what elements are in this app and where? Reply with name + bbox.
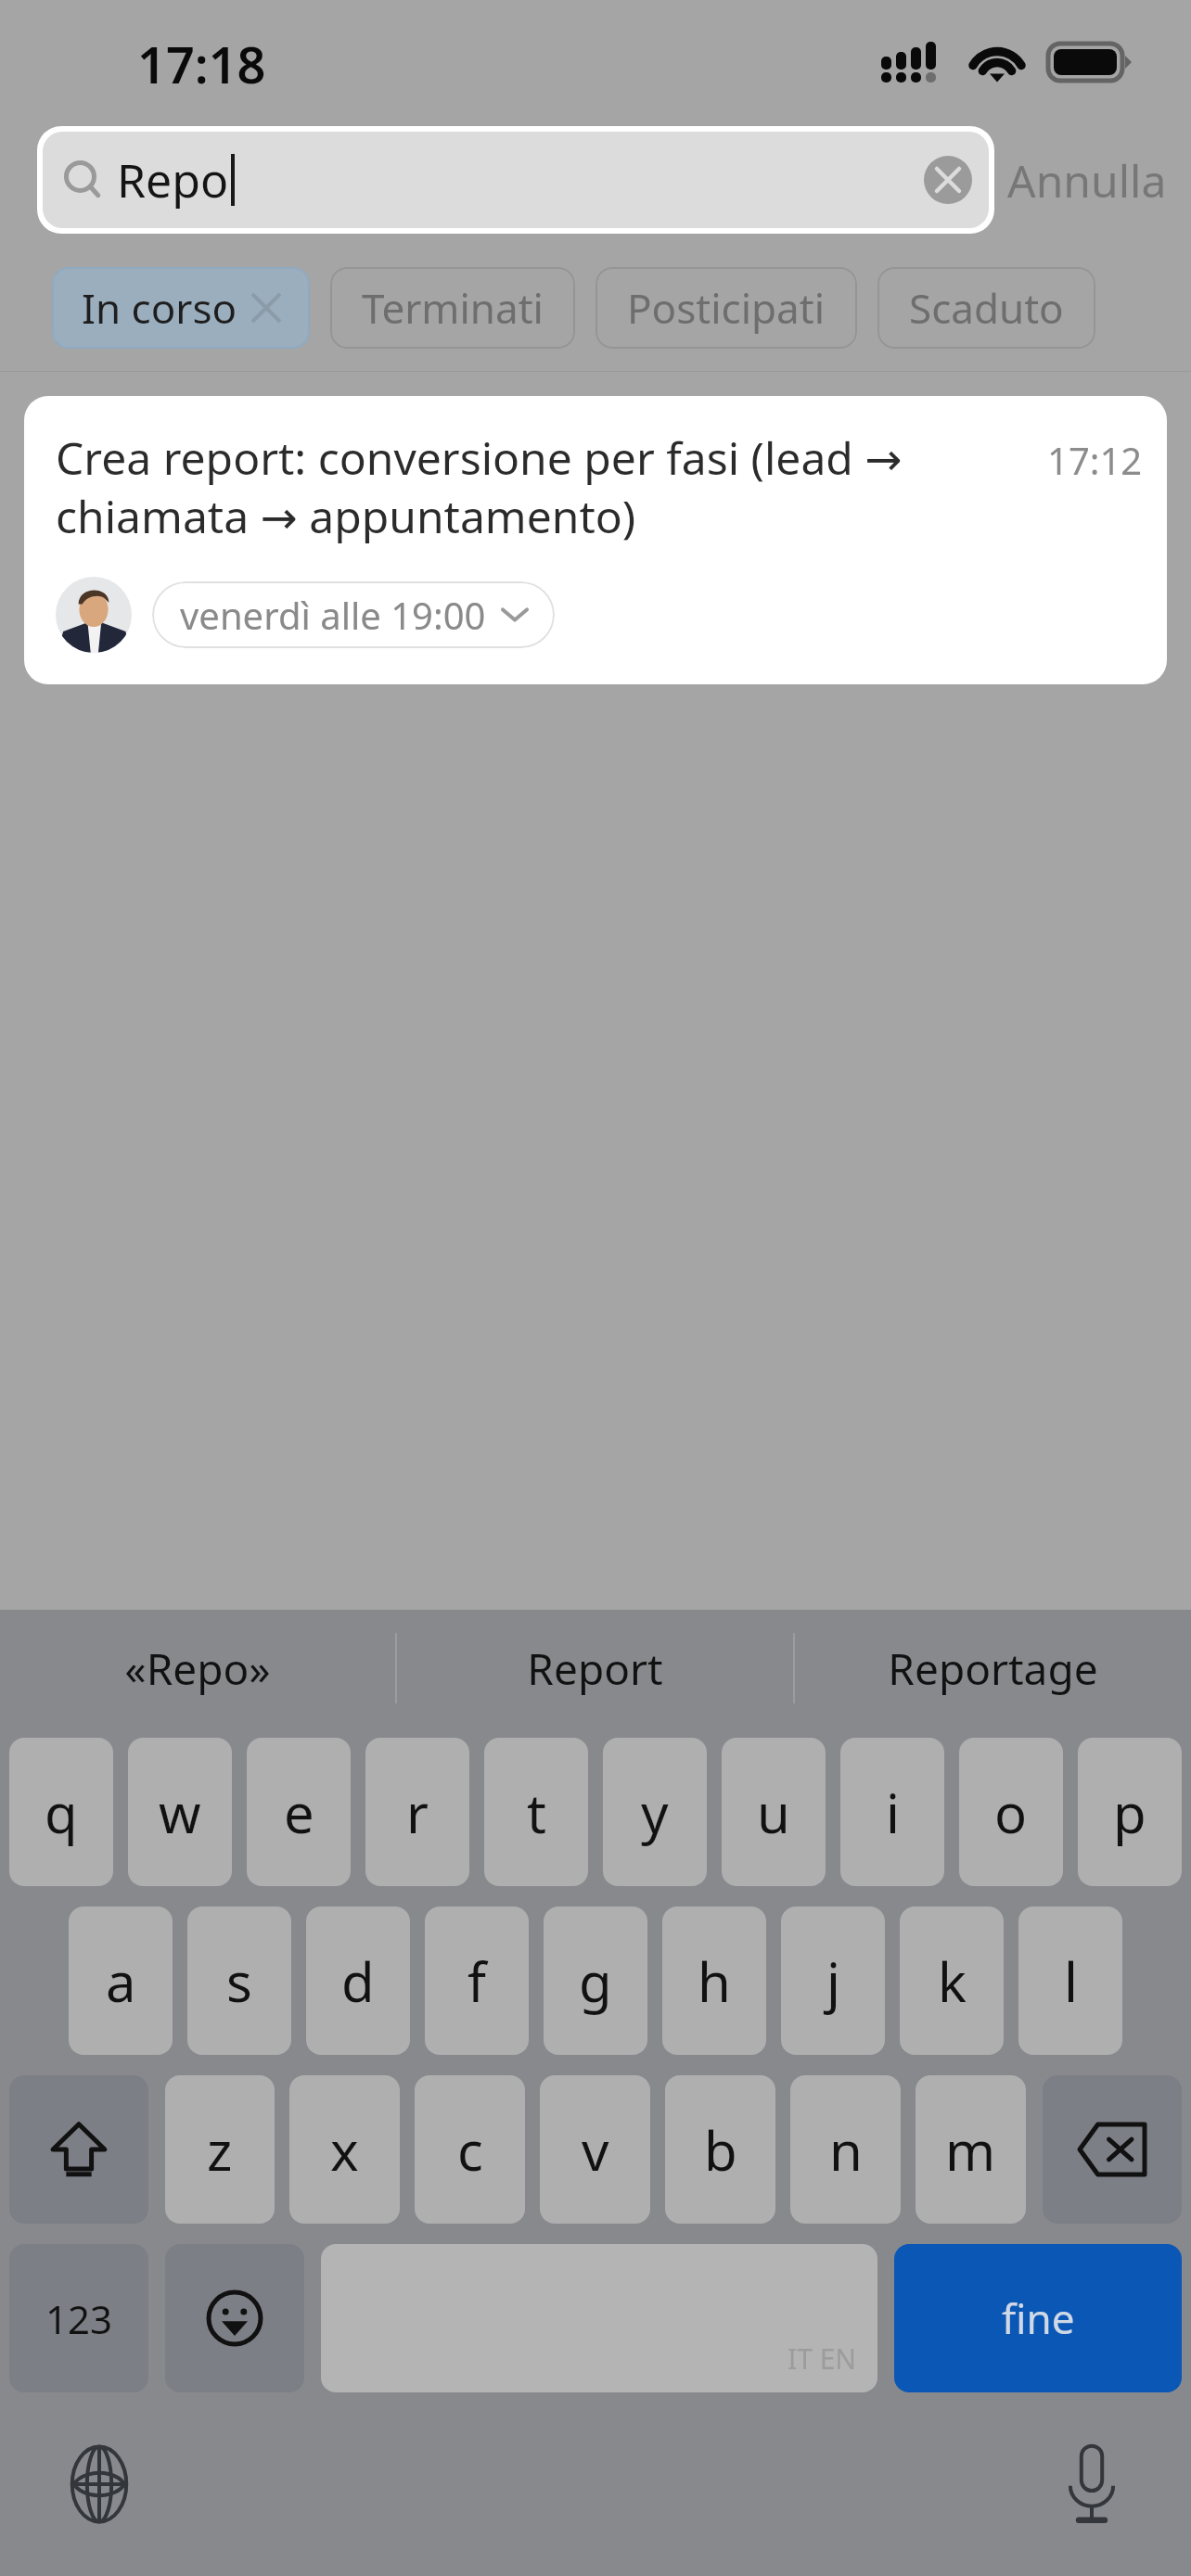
button[interactable]: Cambia tastiera: [48, 2433, 150, 2535]
button[interactable]: t: [484, 1738, 588, 1886]
staticText: b: [704, 2113, 737, 2187]
staticText: x: [330, 2113, 359, 2187]
button[interactable]: g: [544, 1906, 647, 2055]
button[interactable]: z: [165, 2075, 275, 2224]
staticText: fine: [1002, 2290, 1075, 2346]
staticText: h: [698, 1945, 731, 2018]
staticText: venerdì alle 19:00: [180, 590, 486, 640]
staticText: d: [341, 1945, 375, 2018]
staticText: Annulla: [1007, 150, 1167, 210]
button[interactable]: In corso: [52, 267, 310, 349]
button[interactable]: c: [415, 2075, 525, 2224]
button[interactable]: fine: [894, 2244, 1182, 2392]
staticText: 17:12: [1047, 435, 1143, 485]
staticText: f: [467, 1945, 486, 2018]
staticText: 17:18: [137, 30, 266, 98]
button[interactable]: r: [365, 1738, 469, 1886]
button[interactable]: n: [790, 2075, 901, 2224]
button[interactable]: d: [306, 1906, 410, 2055]
button[interactable]: Crea report: conversione per fasi (lead …: [24, 396, 1167, 684]
button[interactable]: h: [662, 1906, 766, 2055]
staticText: c: [457, 2113, 483, 2187]
staticText: n: [829, 2113, 863, 2187]
staticText: i: [886, 1776, 900, 1849]
staticText: w: [159, 1776, 201, 1849]
button[interactable]: Terminati: [330, 267, 575, 349]
staticText: z: [207, 2113, 233, 2187]
button[interactable]: Cancella testo: [924, 156, 972, 204]
button[interactable]: Dettatura: [1041, 2433, 1143, 2535]
button[interactable]: Cancella: [1043, 2075, 1182, 2224]
staticText: t: [527, 1776, 546, 1849]
staticText: Repo: [117, 148, 229, 211]
button[interactable]: y: [603, 1738, 707, 1886]
button[interactable]: Annulla: [1007, 150, 1167, 210]
button[interactable]: IT EN: [321, 2244, 877, 2392]
staticText: IT EN: [788, 2340, 857, 2378]
staticText: 123: [45, 2292, 113, 2345]
staticText: In corso: [82, 280, 237, 336]
staticText: l: [1064, 1945, 1078, 2018]
button[interactable]: u: [722, 1738, 826, 1886]
staticText: v: [582, 2113, 609, 2187]
staticText: u: [757, 1776, 790, 1849]
staticText: Report: [527, 1639, 663, 1698]
button[interactable]: i: [840, 1738, 944, 1886]
button[interactable]: Emoji: [165, 2244, 304, 2392]
staticText: Terminati: [362, 280, 544, 336]
staticText: k: [938, 1945, 967, 2018]
button[interactable]: k: [900, 1906, 1004, 2055]
button[interactable]: Posticipati: [595, 267, 857, 349]
staticText: q: [45, 1776, 78, 1849]
button[interactable]: q: [9, 1738, 113, 1886]
button[interactable]: w: [128, 1738, 232, 1886]
button[interactable]: 123: [9, 2244, 148, 2392]
button[interactable]: m: [916, 2075, 1026, 2224]
button[interactable]: s: [187, 1906, 291, 2055]
staticText: Scaduto: [909, 280, 1064, 336]
staticText: «Repo»: [124, 1639, 271, 1698]
button[interactable]: a: [69, 1906, 173, 2055]
staticText: g: [579, 1945, 612, 2018]
staticText: j: [826, 1945, 840, 2018]
staticText: o: [994, 1776, 1028, 1849]
staticText: Reportage: [888, 1639, 1098, 1698]
button[interactable]: v: [540, 2075, 650, 2224]
button[interactable]: x: [289, 2075, 400, 2224]
staticText: Crea report: conversione per fasi (lead …: [56, 427, 1032, 547]
staticText: m: [945, 2113, 996, 2187]
staticText: s: [226, 1945, 252, 2018]
button[interactable]: e: [247, 1738, 351, 1886]
button[interactable]: Repo: [43, 132, 989, 228]
staticText: Posticipati: [627, 280, 826, 336]
staticText: a: [106, 1945, 136, 2018]
button[interactable]: Maiuscole: [9, 2075, 148, 2224]
button[interactable]: «Repo»: [0, 1610, 395, 1727]
staticText: y: [641, 1776, 669, 1849]
button[interactable]: o: [959, 1738, 1063, 1886]
button[interactable]: Scaduto: [877, 267, 1095, 349]
button[interactable]: f: [425, 1906, 529, 2055]
staticText: r: [406, 1776, 429, 1849]
button[interactable]: Report: [397, 1610, 793, 1727]
button[interactable]: l: [1018, 1906, 1122, 2055]
button[interactable]: j: [781, 1906, 885, 2055]
staticText: e: [284, 1776, 314, 1849]
button[interactable]: b: [665, 2075, 775, 2224]
button[interactable]: Reportage: [795, 1610, 1191, 1727]
staticText: p: [1113, 1776, 1146, 1849]
button[interactable]: venerdì alle 19:00: [152, 581, 555, 648]
button[interactable]: p: [1078, 1738, 1182, 1886]
